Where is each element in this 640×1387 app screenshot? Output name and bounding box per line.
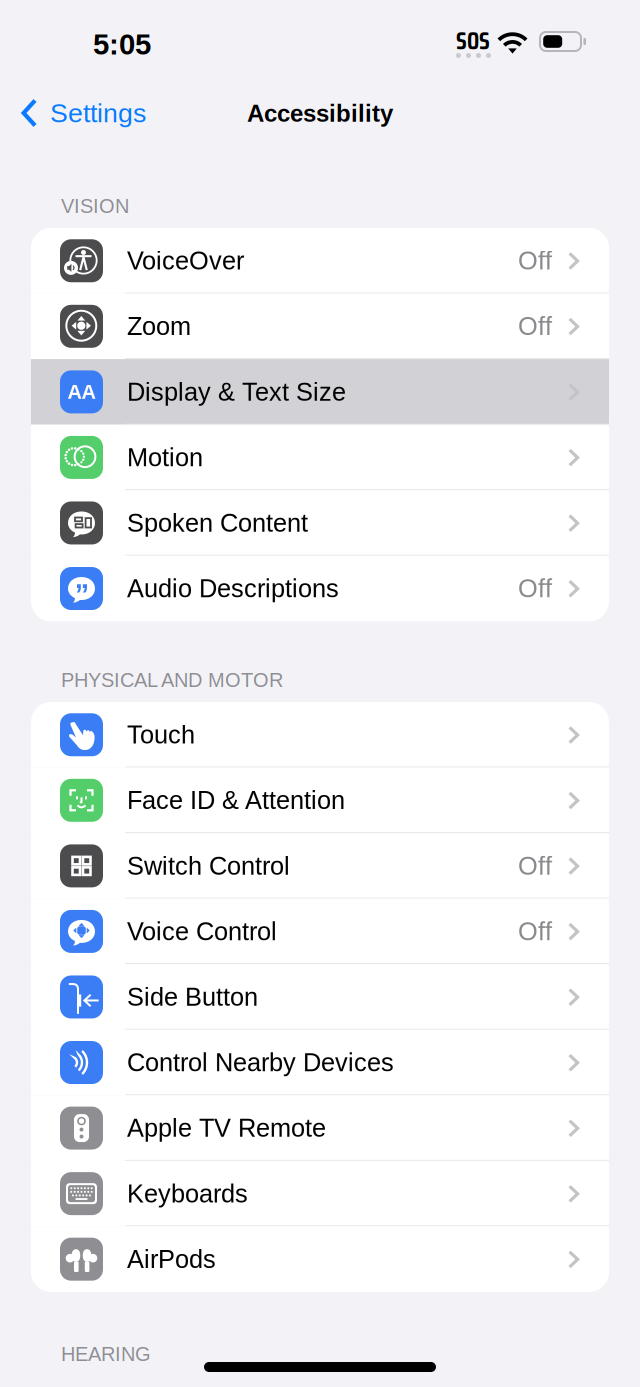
staticText: Off [518,852,552,880]
staticText: SOS [456,22,490,60]
staticText: Voice Control [127,917,277,946]
staticText: PHYSICAL AND MOTOR [61,669,283,691]
button[interactable]: ” [31,556,609,621]
button[interactable]: Control Nearby Devices [31,1030,609,1095]
button[interactable]: Voice Control [31,899,609,964]
staticText: Motion [127,443,203,472]
staticText: Touch [127,721,195,749]
staticText: HEARING [61,1343,151,1365]
staticText: Accessibility [247,100,393,127]
button[interactable]: Zoom [31,293,609,359]
staticText: Keyboards [127,1179,248,1208]
button[interactable]: Apple TV Remote [31,1095,609,1161]
staticText: Face ID & Attention [127,786,345,814]
button[interactable]: VoiceOver [31,228,609,293]
button[interactable]: Side Button [31,964,609,1030]
staticText: Side Button [127,983,258,1011]
staticText: Settings [50,98,146,128]
button[interactable]: Motion [31,425,609,490]
button[interactable]: Face ID & Attention [31,767,609,833]
staticText: VISION [61,195,129,217]
staticText: Spoken Content [127,509,308,537]
button[interactable]: AirPods [31,1226,609,1292]
button[interactable]: Keyboards [31,1161,609,1226]
staticText: Control Nearby Devices [127,1048,394,1077]
staticText: Switch Control [127,852,290,880]
staticText: Display & Text Size [127,378,346,406]
button[interactable]: AA [31,359,609,425]
staticText: Off [518,574,552,603]
button[interactable]: Spoken Content [31,490,609,556]
button[interactable]: Settings [0,86,162,140]
staticText: VoiceOver [127,247,244,275]
button[interactable]: Touch [31,702,609,767]
staticText: Apple TV Remote [127,1114,326,1142]
staticText: Audio Descriptions [127,574,339,603]
staticText: Off [518,312,552,340]
staticText: Off [518,247,552,275]
staticText: ” [74,578,89,610]
staticText: Off [518,917,552,946]
staticText: Zoom [127,312,191,340]
staticText: AA [67,381,95,403]
staticText: AirPods [127,1245,216,1273]
staticText: 5:05 [93,28,151,61]
button[interactable]: Switch Control [31,833,609,899]
